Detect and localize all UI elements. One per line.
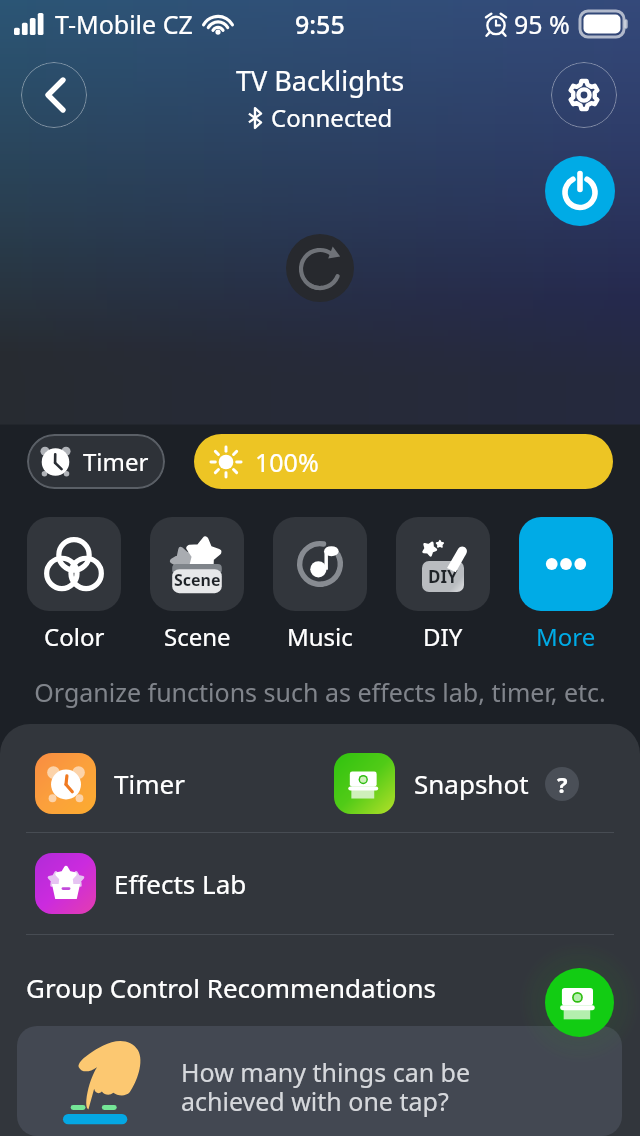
button[interactable]: DIY <box>396 517 490 653</box>
button[interactable]: Back <box>21 62 87 128</box>
button[interactable]: Help <box>545 767 579 801</box>
button[interactable]: Color <box>27 517 121 653</box>
staticText: Snapshot <box>414 766 529 801</box>
button[interactable]: Timer <box>35 753 335 814</box>
button[interactable]: Snapshot <box>545 968 614 1037</box>
button[interactable]: How many things can be achieved with one… <box>17 1026 622 1136</box>
button[interactable]: Scene <box>150 517 244 653</box>
staticText: Color <box>44 620 105 653</box>
staticText: Timer <box>83 445 149 478</box>
staticText: Effects Lab <box>114 866 247 901</box>
staticText: TV Backlights <box>236 62 405 99</box>
staticText: Scene <box>174 569 221 591</box>
staticText: Connected <box>271 101 393 134</box>
staticText: 100% <box>255 445 319 479</box>
staticText: 95 % <box>514 7 570 41</box>
staticText: DIY <box>428 565 458 588</box>
button[interactable]: Timer <box>27 434 165 489</box>
staticText: More <box>536 620 596 653</box>
staticText: Music <box>287 620 353 653</box>
button[interactable]: Snapshot <box>334 753 584 814</box>
button[interactable]: Refresh <box>286 234 354 302</box>
staticText: Timer <box>114 766 185 801</box>
button[interactable]: Settings <box>551 62 617 128</box>
button[interactable]: 100% <box>194 434 613 489</box>
staticText: T-Mobile CZ <box>55 7 193 41</box>
staticText: How many things can be achieved with one… <box>181 1055 471 1118</box>
staticText: Group Control Recommendations <box>26 970 437 1005</box>
button[interactable]: Music <box>273 517 367 653</box>
button[interactable]: Effects Lab <box>35 853 335 914</box>
staticText: Scene <box>164 620 231 653</box>
staticText: 9:55 <box>295 7 345 41</box>
button[interactable]: More <box>519 517 613 653</box>
staticText: Organize functions such as effects lab, … <box>0 675 640 709</box>
staticText: ? <box>557 769 568 799</box>
staticText: DIY <box>423 620 463 653</box>
button[interactable]: Power <box>545 156 615 226</box>
